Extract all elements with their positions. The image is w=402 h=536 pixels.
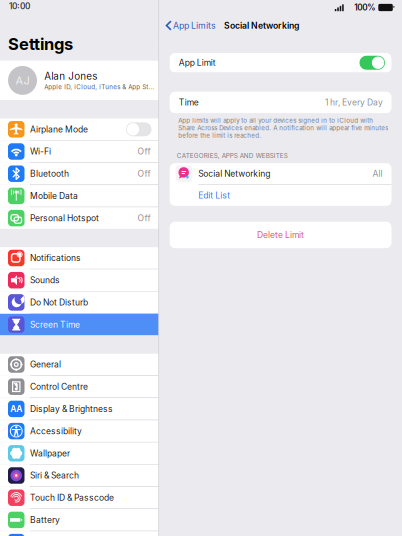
staticText: Apple ID, iCloud, iTunes & App St... <box>44 83 154 91</box>
staticText: 10:00 <box>9 1 30 11</box>
staticText: Wi-Fi <box>30 146 51 157</box>
staticText: Personal Hotspot <box>30 213 99 223</box>
staticText: AA <box>10 404 22 414</box>
staticText: Off <box>137 168 150 179</box>
staticText: Mobile Data <box>30 191 78 201</box>
staticText: Siri & Search <box>30 470 79 481</box>
button[interactable]: Sounds <box>0 269 158 291</box>
staticText: Sounds <box>30 275 60 285</box>
button[interactable]: Personal Hotspot <box>0 207 158 229</box>
staticText: General <box>30 359 61 370</box>
staticText: 1 hr, Every Day <box>325 97 383 108</box>
staticText: Bluetooth <box>30 168 69 179</box>
staticText: Battery <box>30 515 60 525</box>
button[interactable]: Notifications <box>0 247 158 269</box>
staticText: 100% <box>354 2 375 12</box>
button[interactable]: Screen Time <box>0 314 158 335</box>
button[interactable]: Wallpaper <box>0 442 158 464</box>
button[interactable]: Mobile Data <box>0 185 158 207</box>
staticText: Touch ID & Passcode <box>30 492 114 503</box>
staticText: Screen Time <box>30 319 80 330</box>
button[interactable]: Airplane Mode <box>0 118 158 140</box>
staticText: Off <box>137 146 150 157</box>
button[interactable]: Delete Limit <box>170 222 391 248</box>
staticText: Notifications <box>30 253 81 263</box>
button[interactable]: Edit List <box>170 185 391 206</box>
button[interactable]: Wi-Fi <box>0 141 158 162</box>
staticText: Off <box>137 213 150 223</box>
staticText: Airplane Mode <box>30 124 88 134</box>
staticText: All <box>372 168 382 179</box>
staticText: CATEGORIES, APPS AND WEBSITES <box>177 152 288 160</box>
staticText: App Limit <box>179 58 216 68</box>
staticText: App limits will apply to all your device… <box>178 117 388 139</box>
staticText: Social Networking <box>198 168 270 179</box>
button[interactable]: Bluetooth <box>0 163 158 184</box>
button[interactable]: Accessibility <box>0 420 158 442</box>
staticText: Delete Limit <box>257 230 304 240</box>
button[interactable]: Social Networking <box>170 163 391 184</box>
staticText: Edit List <box>198 190 230 200</box>
button[interactable]: AJ <box>0 61 158 100</box>
staticText: Accessibility <box>30 426 82 436</box>
button[interactable]: Do Not Disturb <box>0 292 158 313</box>
staticText: Time <box>179 97 199 108</box>
staticText: Do Not Disturb <box>30 297 88 307</box>
button[interactable]: Control Centre <box>0 376 158 397</box>
staticText: AJ <box>15 74 29 87</box>
staticText: Settings <box>8 34 73 54</box>
button[interactable]: General <box>0 354 158 375</box>
staticText: App Limits <box>173 20 216 31</box>
button[interactable]: Touch ID & Passcode <box>0 487 158 508</box>
button[interactable]: Time <box>170 92 391 113</box>
staticText: Social Networking <box>224 20 299 31</box>
button[interactable]: Battery <box>0 509 158 531</box>
staticText: Display & Brightness <box>30 404 113 414</box>
button[interactable]: App Limit <box>170 53 391 72</box>
button[interactable]: Siri & Search <box>0 465 158 486</box>
staticText: Wallpaper <box>30 448 70 458</box>
button[interactable]: AA <box>0 398 158 420</box>
button[interactable]: App Limits <box>159 15 220 36</box>
staticText: Control Centre <box>30 381 88 392</box>
staticText: Alan Jones <box>44 70 97 82</box>
button[interactable]: Privacy <box>0 531 158 536</box>
